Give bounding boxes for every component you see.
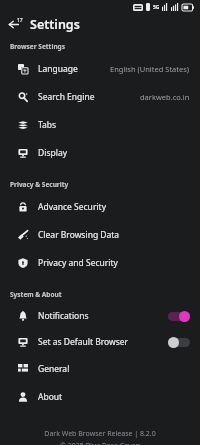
staticText: Notifications <box>38 310 89 322</box>
button[interactable]: Advance Security <box>0 193 200 221</box>
button[interactable]: Search Engine <box>0 83 200 111</box>
button[interactable]: Tabs <box>0 111 200 139</box>
staticText: Display <box>38 147 67 159</box>
button[interactable]: About <box>0 383 200 411</box>
staticText: System & About <box>10 290 62 299</box>
staticText: Tabs <box>38 119 57 131</box>
staticText: Settings <box>30 16 80 33</box>
button[interactable]: Privacy and Security <box>0 249 200 277</box>
button[interactable]: Language <box>0 55 200 83</box>
staticText: 17 <box>17 17 23 24</box>
staticText: Language <box>38 63 78 75</box>
staticText: English (United States) <box>110 64 190 74</box>
staticText: Set as Default Browser <box>38 336 129 348</box>
button[interactable]: Clear Browsing Data <box>0 221 200 249</box>
button[interactable]: Notifications <box>0 303 200 329</box>
button[interactable]: Back <box>3 14 23 34</box>
button[interactable]: Set as Default Browser <box>0 329 200 355</box>
staticText: Browser Settings <box>10 42 65 51</box>
staticText: Advance Security <box>38 201 106 213</box>
staticText: darkweb.co.in <box>140 92 190 102</box>
button[interactable]: Display <box>0 139 200 167</box>
button[interactable]: General <box>0 355 200 383</box>
staticText: © 2025 Blue Rose Coven <box>60 441 140 445</box>
staticText: About <box>38 391 63 403</box>
staticText: Privacy & Security <box>10 180 69 189</box>
staticText: Clear Browsing Data <box>38 229 120 241</box>
staticText: 5G <box>153 4 160 11</box>
staticText: Dark Web Browser Release | 8.2.0 <box>44 429 156 439</box>
staticText: Privacy and Security <box>38 257 118 269</box>
staticText: Search Engine <box>38 91 95 103</box>
staticText: General <box>38 363 70 375</box>
